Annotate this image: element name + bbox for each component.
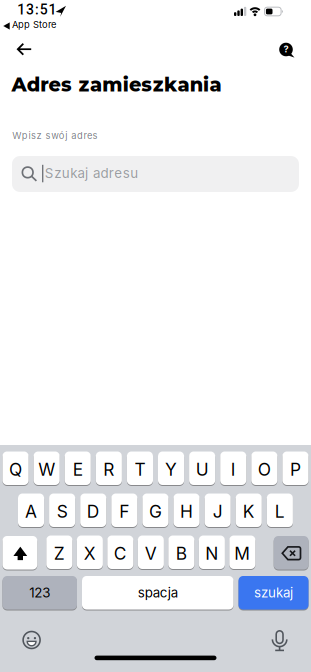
staticText: ? [283, 43, 288, 54]
staticText: U [196, 459, 209, 479]
staticText: App Store [12, 19, 56, 30]
staticText: Q [9, 459, 22, 479]
button[interactable]: W [34, 451, 60, 486]
staticText: R [103, 459, 114, 479]
button[interactable]: G [142, 493, 168, 528]
button[interactable]: Back [10, 38, 38, 60]
staticText: szukaj [254, 585, 293, 601]
button[interactable]: H [173, 493, 200, 528]
staticText: Szukaj adresu [45, 165, 138, 181]
staticText: N [205, 543, 218, 563]
button[interactable]: N [199, 535, 225, 570]
staticText: F [119, 501, 129, 521]
staticText: G [149, 501, 162, 521]
button[interactable]: M [229, 535, 255, 570]
button[interactable]: Q [2, 451, 29, 486]
button[interactable]: szukaj [238, 576, 308, 610]
button[interactable]: Dictate [272, 630, 288, 651]
button[interactable]: K [236, 493, 262, 528]
staticText: E [73, 459, 83, 479]
button[interactable]: R [96, 451, 122, 486]
staticText: J [213, 501, 223, 521]
button[interactable]: L [267, 493, 293, 528]
button[interactable]: Emoji [23, 631, 41, 649]
button[interactable]: E [65, 451, 91, 486]
staticText: C [114, 543, 127, 563]
button[interactable]: V [138, 535, 164, 570]
staticText: H [180, 501, 193, 521]
staticText: Z [54, 543, 65, 563]
staticText: W [38, 459, 55, 479]
staticText: P [290, 459, 301, 479]
staticText: D [87, 501, 100, 521]
staticText: M [234, 543, 250, 563]
staticText: K [243, 501, 255, 521]
staticText: X [84, 543, 96, 563]
button[interactable]: Y [158, 451, 184, 486]
button[interactable]: D [80, 493, 106, 528]
staticText: S [57, 501, 68, 521]
staticText: T [134, 459, 145, 479]
button[interactable]: B [168, 535, 194, 570]
button[interactable]: Help [277, 41, 294, 58]
button[interactable]: spacja [82, 576, 233, 610]
button[interactable]: P [282, 451, 308, 486]
staticText: 13:51 [17, 2, 57, 18]
staticText: A [25, 501, 37, 521]
staticText: 123 [29, 585, 50, 601]
staticText: spacja [138, 585, 178, 601]
staticText: Adres zamieszkania [11, 73, 221, 96]
staticText: Y [165, 459, 177, 479]
button[interactable]: J [205, 493, 231, 528]
button[interactable]: I [220, 451, 246, 486]
button[interactable]: Z [46, 535, 72, 570]
staticText: O [258, 459, 271, 479]
staticText: I [231, 459, 236, 479]
button[interactable]: O [251, 451, 277, 486]
staticText: L [275, 501, 285, 521]
button[interactable]: Delete [274, 535, 308, 570]
button[interactable]: U [189, 451, 215, 486]
button[interactable]: T [127, 451, 153, 486]
button[interactable]: Szukaj adresu [12, 156, 299, 192]
button[interactable]: Shift [2, 535, 37, 570]
button[interactable]: F [111, 493, 137, 528]
button[interactable]: 123 [2, 576, 77, 610]
staticText: V [145, 543, 157, 563]
button[interactable]: X [77, 535, 103, 570]
staticText: B [176, 543, 187, 563]
button[interactable]: A [18, 493, 44, 528]
staticText: Wpisz swój adres [12, 130, 97, 141]
button[interactable]: S [49, 493, 75, 528]
button[interactable]: C [107, 535, 133, 570]
